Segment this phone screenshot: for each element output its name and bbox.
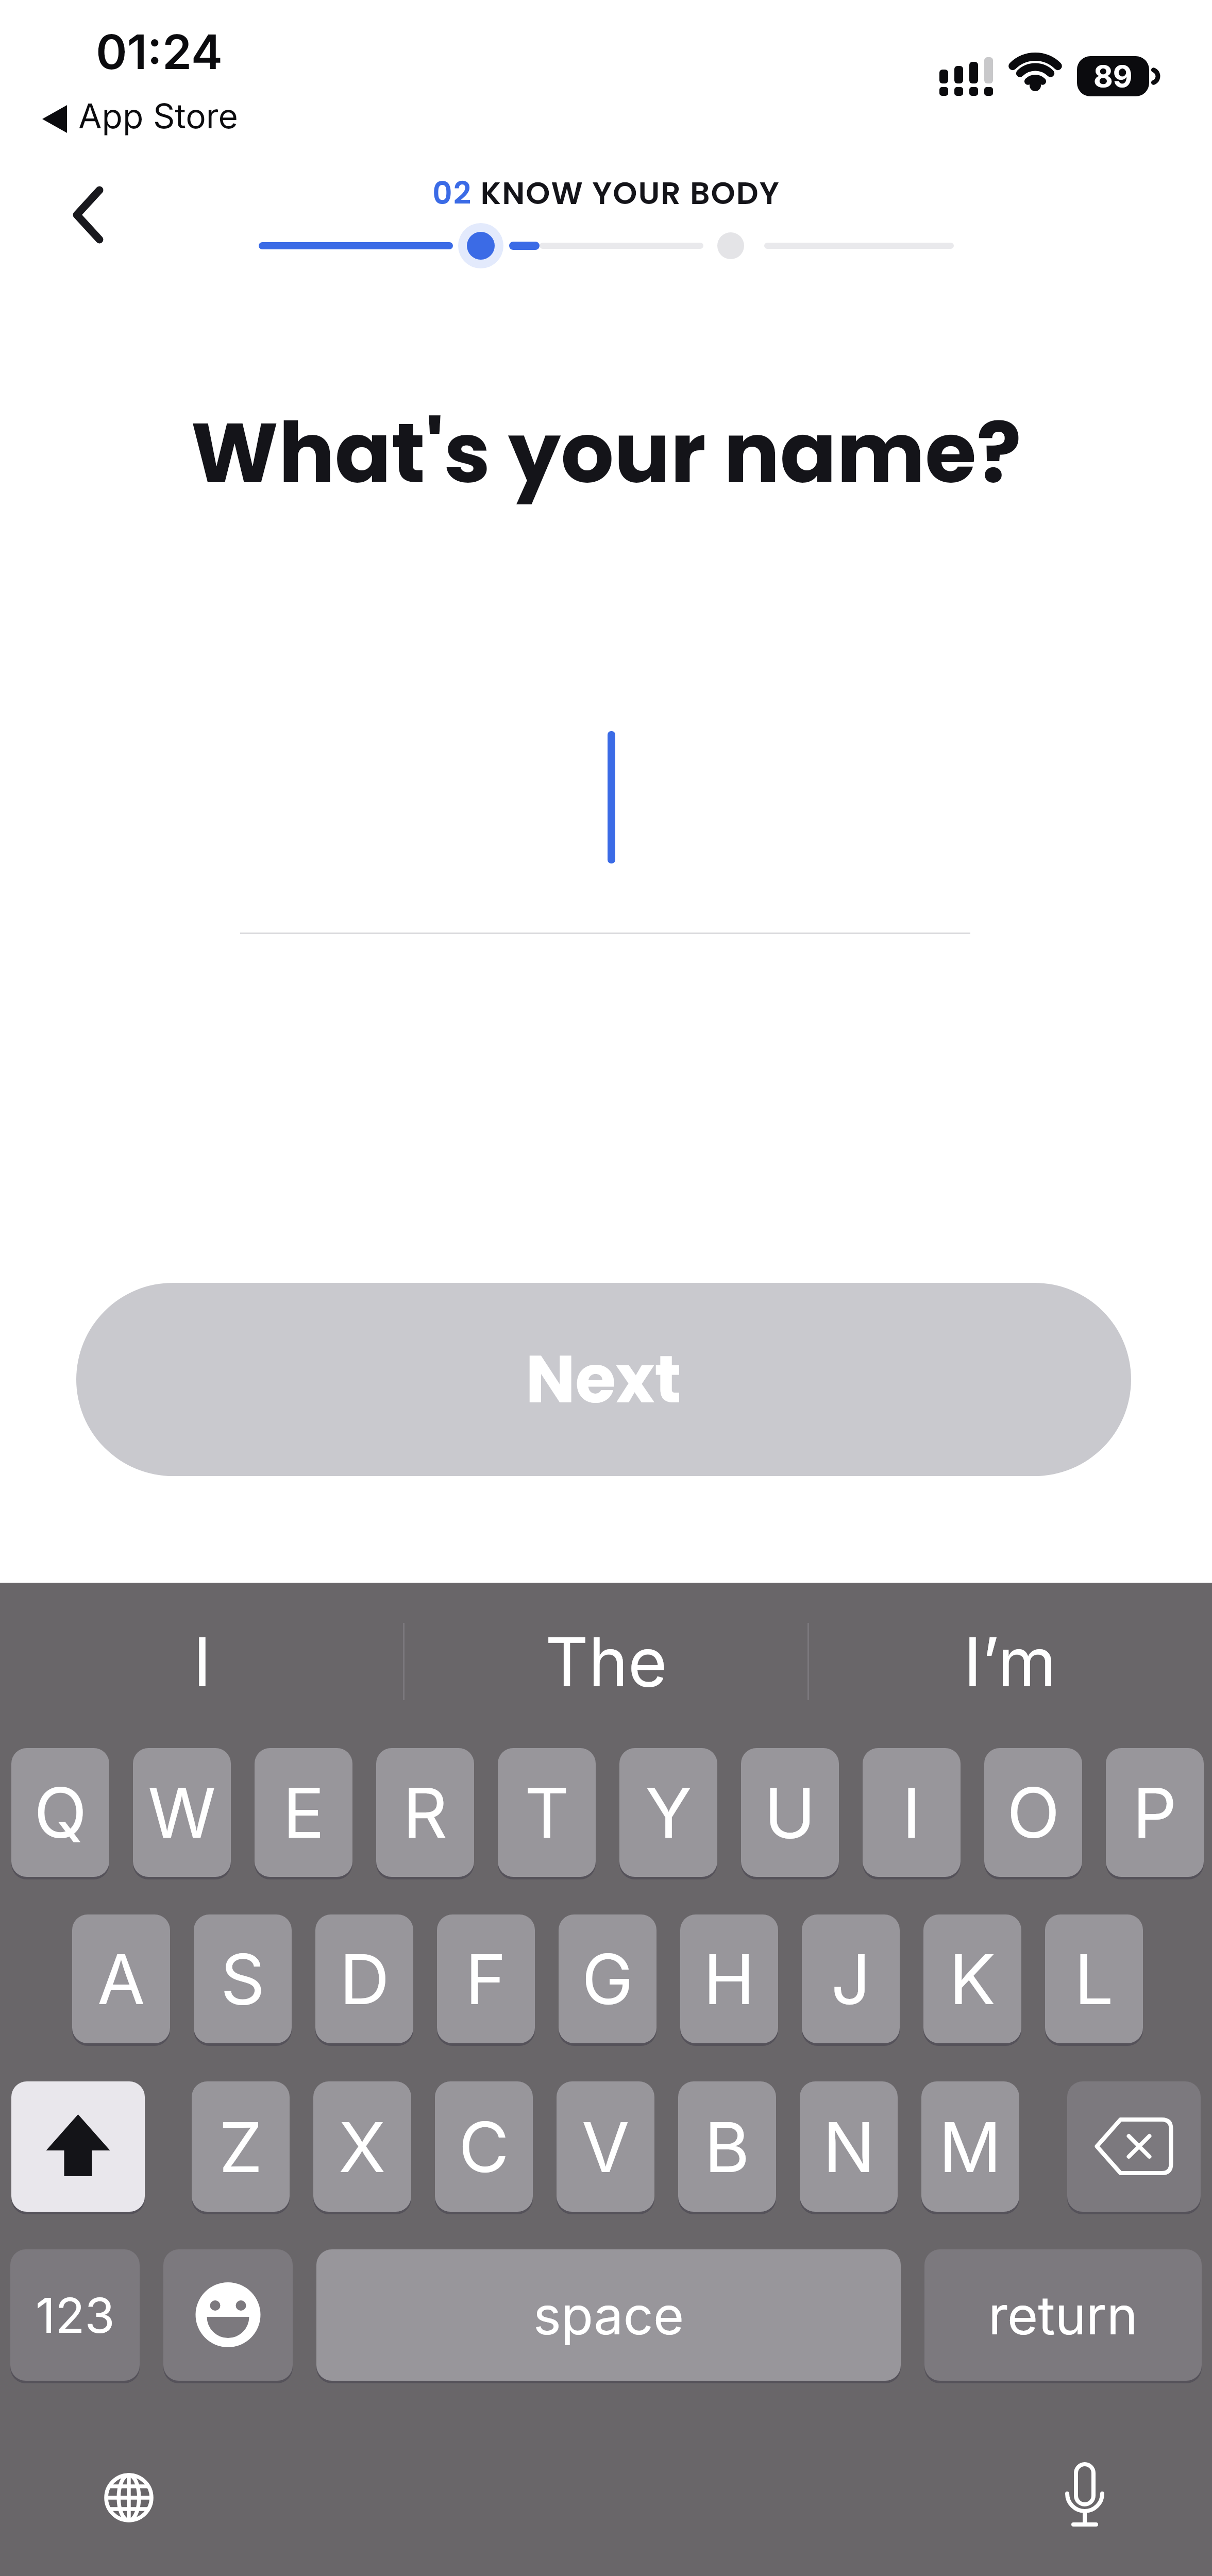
staticText: The [545, 1621, 667, 1702]
button[interactable]: E [255, 1748, 352, 1877]
staticText: D [340, 1937, 390, 2021]
staticText: C [459, 2105, 509, 2189]
button[interactable]: return [924, 2249, 1202, 2381]
button[interactable] [1067, 2081, 1201, 2212]
button[interactable]: Z [192, 2081, 290, 2212]
staticText: I [902, 1771, 921, 1854]
staticText: S [221, 1937, 265, 2021]
button[interactable]: The [405, 1618, 807, 1705]
button[interactable] [1043, 2456, 1126, 2539]
button[interactable]: G [559, 1914, 656, 2043]
staticText: Next [526, 1333, 682, 1426]
staticText: B [704, 2105, 750, 2189]
staticText: R [403, 1771, 448, 1854]
button[interactable]: W [133, 1748, 231, 1877]
staticText: 89 [1093, 58, 1133, 94]
button[interactable]: H [680, 1914, 778, 2043]
button[interactable]: I [863, 1748, 961, 1877]
button[interactable]: V [557, 2081, 654, 2212]
staticText: K [949, 1937, 996, 2021]
staticText: 01:24 [96, 23, 223, 80]
button[interactable]: A [72, 1914, 170, 2043]
button[interactable]: J [802, 1914, 900, 2043]
staticText: I [193, 1621, 211, 1702]
button[interactable]: 123 [10, 2249, 140, 2381]
button[interactable]: X [313, 2081, 411, 2212]
staticText: W [148, 1771, 216, 1854]
staticText: F [465, 1937, 507, 2021]
button[interactable]: R [376, 1748, 474, 1877]
button[interactable]: Next [76, 1283, 1131, 1476]
button[interactable]: S [194, 1914, 292, 2043]
staticText: E [283, 1771, 325, 1854]
staticText: Y [645, 1771, 692, 1854]
button[interactable]: K [923, 1914, 1021, 2043]
button[interactable] [163, 2249, 293, 2381]
staticText: space [533, 2283, 684, 2347]
staticText: V [582, 2105, 630, 2189]
button[interactable] [240, 721, 970, 938]
staticText: P [1133, 1771, 1177, 1854]
button[interactable]: U [741, 1748, 839, 1877]
staticText: X [339, 2105, 386, 2189]
button[interactable] [88, 2456, 170, 2539]
staticText: What's your name? [191, 395, 1022, 512]
staticText: A [97, 1937, 145, 2021]
staticText: L [1074, 1937, 1114, 2021]
button[interactable] [57, 170, 139, 263]
button[interactable]: M [921, 2081, 1019, 2212]
staticText: I’m [964, 1621, 1056, 1702]
staticText: N [823, 2105, 875, 2189]
button[interactable]: B [678, 2081, 776, 2212]
staticText: T [525, 1771, 569, 1854]
button[interactable]: F [437, 1914, 535, 2043]
button[interactable]: I [1, 1618, 403, 1705]
button[interactable]: Q [11, 1748, 109, 1877]
button[interactable]: T [498, 1748, 596, 1877]
staticText: M [939, 2105, 1002, 2189]
button[interactable]: P [1106, 1748, 1204, 1877]
button[interactable]: Y [619, 1748, 717, 1877]
staticText: U [764, 1771, 816, 1854]
staticText: G [582, 1937, 633, 2021]
staticText: J [831, 1937, 871, 2021]
button[interactable]: N [800, 2081, 898, 2212]
staticText: Q [34, 1771, 87, 1854]
staticText: O [1007, 1771, 1060, 1854]
staticText: App Store [78, 95, 239, 137]
button[interactable]: C [435, 2081, 533, 2212]
staticText: return [988, 2283, 1138, 2347]
button[interactable]: space [316, 2249, 901, 2381]
staticText: H [703, 1937, 755, 2021]
button[interactable]: D [315, 1914, 413, 2043]
staticText: 02 KNOW YOUR BODY [432, 172, 780, 215]
button[interactable]: O [984, 1748, 1082, 1877]
button[interactable] [11, 2081, 145, 2212]
staticText: 123 [36, 2286, 115, 2345]
staticText: Z [219, 2105, 263, 2189]
button[interactable]: L [1045, 1914, 1143, 2043]
button[interactable]: I’m [809, 1618, 1211, 1705]
